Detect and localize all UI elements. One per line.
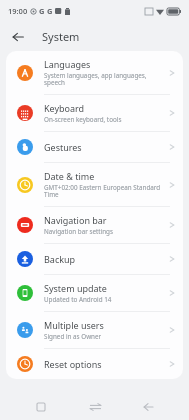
staticText: GMT+02:00 Eastern European Standard Time	[44, 183, 165, 199]
staticText: Keyboard	[44, 102, 85, 114]
button[interactable]: Back	[135, 394, 161, 420]
button[interactable]: Keyboard	[6, 95, 183, 131]
staticText: System update	[44, 282, 107, 294]
staticText: System languages, app languages, speech	[44, 71, 165, 87]
button[interactable]: Home	[82, 394, 108, 420]
staticText: System	[42, 29, 80, 44]
staticText: 19:00	[8, 6, 28, 16]
staticText: Updated to Android 14	[44, 295, 112, 304]
staticText: Navigation bar settings	[44, 227, 113, 236]
staticText: G	[39, 6, 45, 16]
button[interactable]: Back	[8, 27, 28, 47]
staticText: On-screen keyboard, tools	[44, 115, 122, 124]
staticText: Navigation bar	[44, 214, 107, 226]
staticText: Signed in as Owner	[44, 332, 102, 341]
button[interactable]: Languages	[6, 51, 183, 94]
staticText: Gestures	[44, 141, 82, 153]
button[interactable]: Reset options	[6, 349, 183, 379]
button[interactable]: Recents	[28, 394, 54, 420]
button[interactable]: Multiple users	[6, 312, 183, 348]
button[interactable]: System update	[6, 275, 183, 311]
button[interactable]: Navigation bar	[6, 207, 183, 243]
staticText: Backup	[44, 253, 76, 265]
button[interactable]: Date & time	[6, 163, 183, 206]
button[interactable]: Backup	[6, 244, 183, 274]
button[interactable]: Gestures	[6, 132, 183, 162]
staticText: Date & time	[44, 170, 95, 182]
staticText: Multiple users	[44, 319, 104, 331]
staticText: Languages	[44, 58, 91, 70]
staticText: Reset options	[44, 358, 102, 370]
staticText: G	[47, 6, 53, 16]
